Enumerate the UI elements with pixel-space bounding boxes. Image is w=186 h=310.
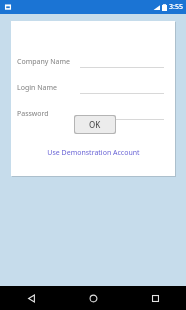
staticText: Use Demonstration Account (47, 148, 140, 158)
staticText: Company Name (17, 57, 70, 67)
button[interactable]: Login Name (11, 81, 175, 101)
button[interactable]: Recent apps (124, 286, 186, 310)
button[interactable]: Back (0, 286, 62, 310)
button[interactable]: Password (11, 107, 175, 127)
staticText: Login Name (17, 83, 57, 93)
staticText: 3:55 (169, 2, 183, 12)
button[interactable]: Use Demonstration Account (11, 146, 175, 160)
button[interactable]: Home (62, 286, 124, 310)
staticText: OK (89, 119, 101, 130)
staticText: Password (17, 109, 49, 119)
button[interactable]: Company Name (11, 55, 175, 75)
button[interactable]: OK (75, 116, 115, 133)
